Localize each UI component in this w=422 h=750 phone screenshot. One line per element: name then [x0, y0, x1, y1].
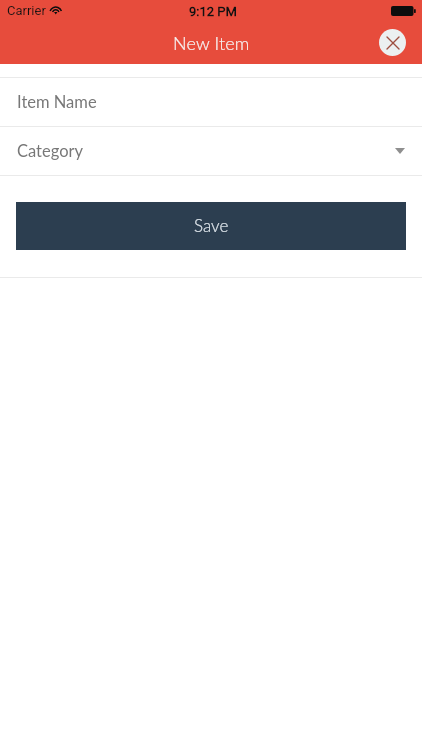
- staticText: Item Name: [17, 92, 97, 112]
- staticText: Category: [17, 141, 84, 161]
- staticText: Save: [194, 215, 229, 235]
- button[interactable]: Close: [379, 29, 406, 56]
- button[interactable]: Save: [16, 202, 406, 250]
- staticText: New Item: [173, 32, 250, 54]
- staticText: 9:12 PM: [189, 4, 237, 19]
- button[interactable]: Item Name: [0, 78, 422, 126]
- staticText: Carrier: [7, 3, 46, 18]
- button[interactable]: Category: [0, 127, 422, 175]
